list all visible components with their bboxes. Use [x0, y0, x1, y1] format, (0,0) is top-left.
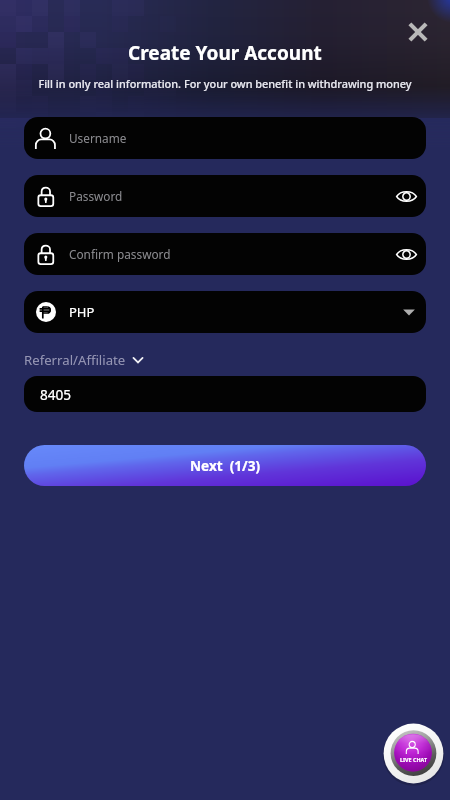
staticText: LIVE CHAT: [400, 756, 428, 763]
staticText: Next (1/3): [190, 456, 261, 475]
button[interactable]: Show password: [388, 178, 424, 214]
button[interactable]: Username: [24, 117, 426, 159]
staticText: Password: [69, 188, 123, 204]
staticText: 8405: [40, 385, 72, 404]
staticText: Fill in only real information. For your …: [38, 76, 412, 91]
staticText: Create Your Account: [128, 40, 322, 66]
button[interactable]: PHP: [24, 291, 426, 333]
button[interactable]: 8405: [24, 376, 426, 412]
staticText: Confirm password: [69, 246, 171, 262]
button[interactable]: Close: [400, 14, 435, 49]
button[interactable]: Password: [24, 175, 426, 217]
button[interactable]: Referral/Affiliate: [24, 351, 144, 369]
button[interactable]: Confirm password: [24, 233, 426, 275]
staticText: Referral/Affiliate: [24, 351, 126, 369]
staticText: PHP: [69, 303, 95, 321]
button[interactable]: Next (1/3): [24, 445, 426, 486]
staticText: Username: [69, 130, 127, 146]
button[interactable]: Show password: [388, 236, 424, 272]
button[interactable]: Live chat: [383, 723, 444, 784]
